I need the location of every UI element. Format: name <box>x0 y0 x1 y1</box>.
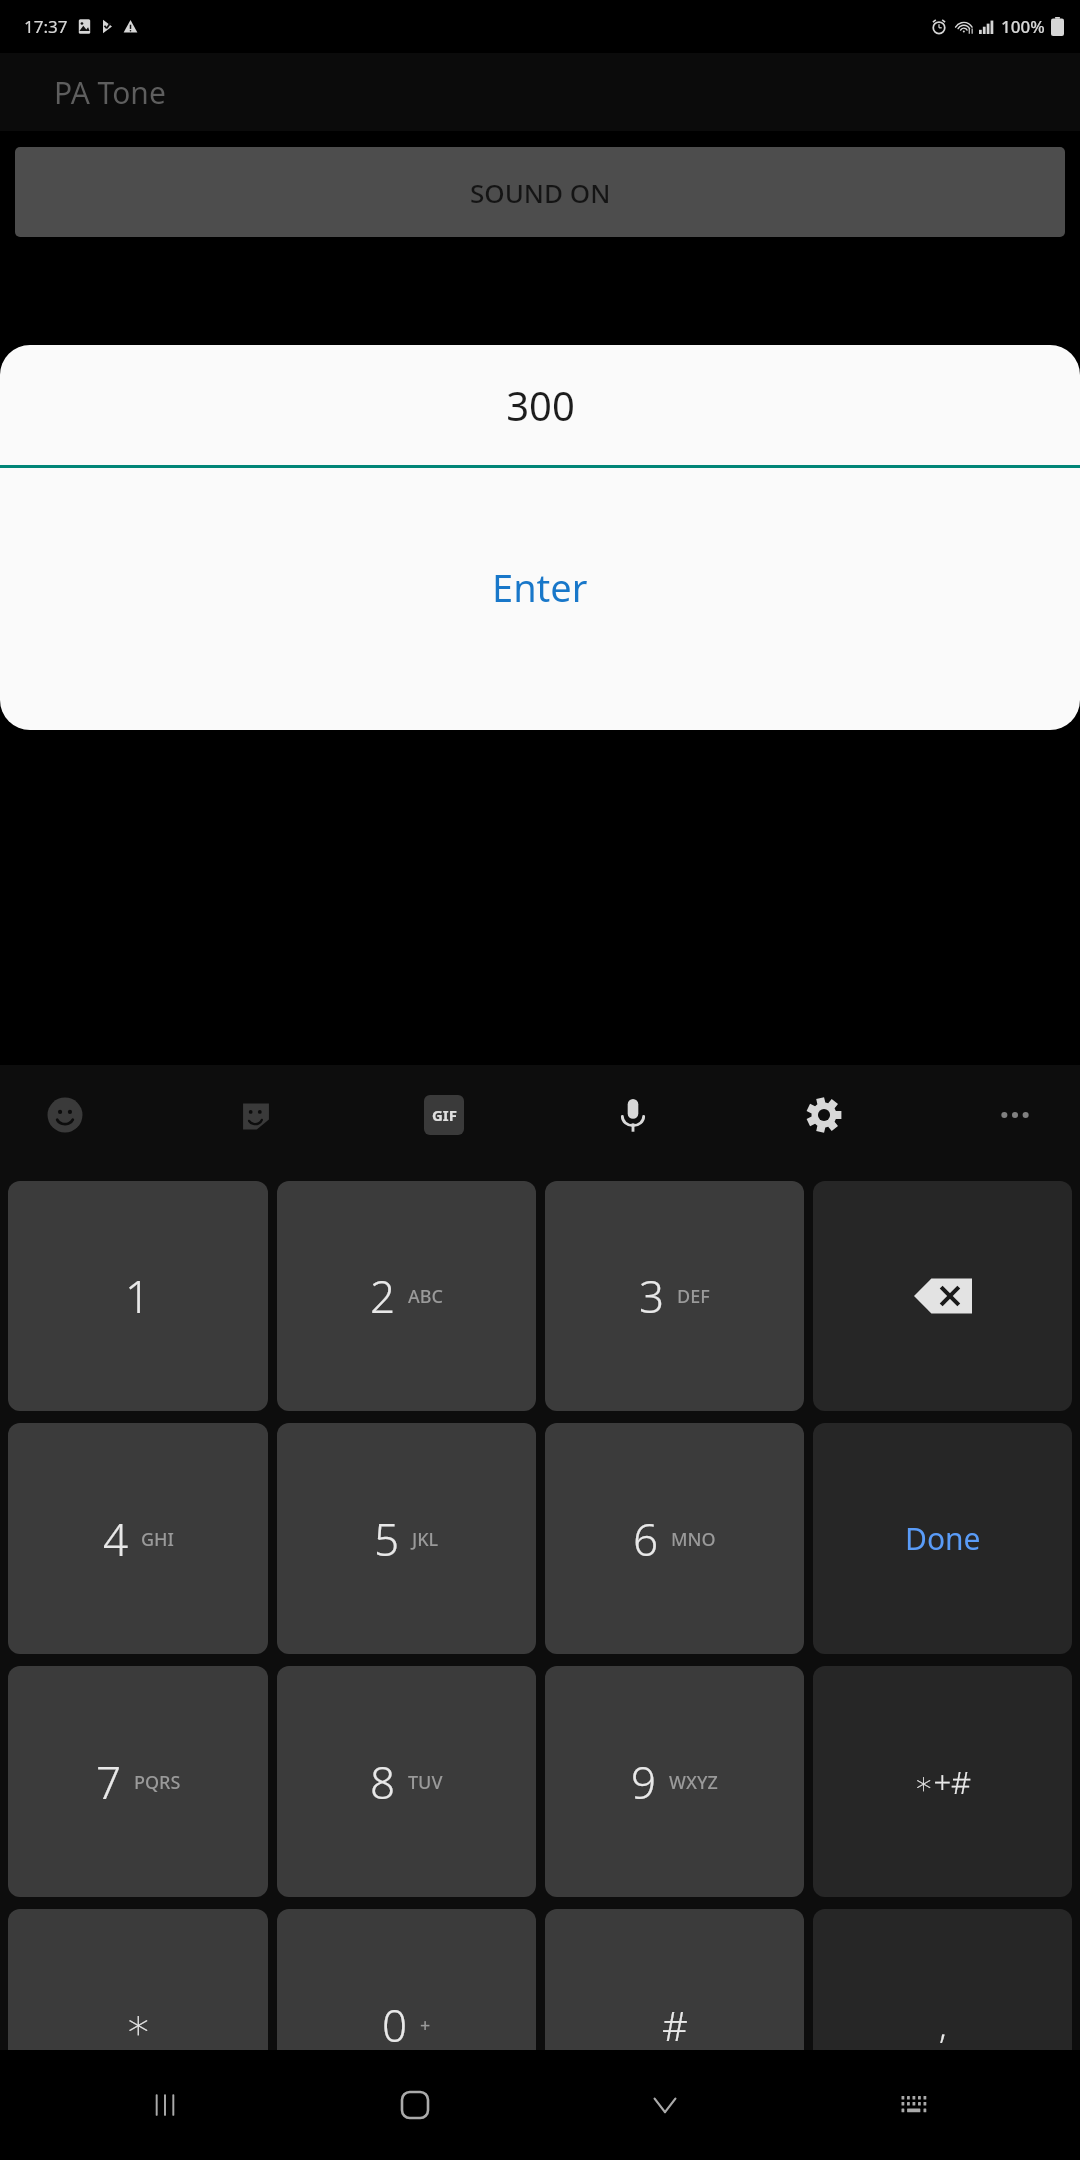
staticText: GIF <box>432 1105 457 1125</box>
staticText: GHI <box>141 1527 174 1552</box>
staticText: LEFT <box>247 441 308 479</box>
staticText: 0 <box>382 1995 408 2055</box>
staticText: Done <box>905 1518 981 1559</box>
staticText: 300 <box>506 378 575 432</box>
button[interactable]: Hide keyboard <box>540 2050 790 2160</box>
button[interactable]: More options <box>992 1092 1038 1138</box>
button[interactable]: 9 <box>545 1666 804 1897</box>
staticText: 1 <box>125 1266 151 1326</box>
staticText: RIGHT <box>761 441 845 479</box>
button[interactable]: Emoji <box>42 1092 88 1138</box>
button[interactable]: 4 <box>8 1423 268 1654</box>
staticText: TUV <box>408 1770 443 1795</box>
button[interactable]: 3 <box>545 1181 804 1411</box>
staticText: 2 <box>370 1266 396 1326</box>
button[interactable]: # <box>545 1909 804 2140</box>
staticText: PQRS <box>134 1770 181 1795</box>
button[interactable]: 1 <box>8 1181 268 1411</box>
button[interactable]: , <box>813 1909 1072 2140</box>
staticText: WXYZ <box>669 1770 718 1795</box>
staticText: ∗ <box>125 2000 152 2049</box>
button[interactable]: 8 <box>277 1666 536 1897</box>
staticText: + <box>420 2013 431 2038</box>
button[interactable]: Home <box>290 2050 540 2160</box>
button[interactable]: 5 <box>277 1423 536 1654</box>
staticText: 4 <box>103 1509 129 1569</box>
button[interactable]: Stickers <box>233 1092 279 1138</box>
staticText: 3 <box>639 1266 665 1326</box>
button[interactable]: RIGHT <box>550 427 1055 493</box>
button[interactable]: Voice input <box>610 1092 656 1138</box>
button[interactable]: GIF <box>424 1095 464 1135</box>
button[interactable]: Keyboard settings <box>801 1092 847 1138</box>
button[interactable]: 6 <box>545 1423 804 1654</box>
button[interactable]: 2 <box>277 1181 536 1411</box>
button[interactable]: 7 <box>8 1666 268 1897</box>
button[interactable]: Enter <box>0 468 1080 730</box>
button[interactable]: Recent apps <box>40 2050 290 2160</box>
staticText: 17:37 <box>24 15 68 38</box>
button[interactable]: Change keyboard <box>790 2050 1040 2160</box>
staticText: ABC <box>408 1284 443 1309</box>
staticText: MNO <box>671 1527 716 1552</box>
staticText: 5 <box>374 1509 400 1569</box>
staticText: 100% <box>1001 15 1045 38</box>
button[interactable]: ∗+# <box>813 1666 1072 1897</box>
staticText: 8 <box>370 1752 396 1812</box>
staticText: DEF <box>677 1284 710 1309</box>
staticText: PA Tone <box>54 72 166 113</box>
staticText: SOUND ON <box>470 175 611 210</box>
staticText: 6 <box>633 1509 659 1569</box>
staticText: Enter <box>492 561 588 613</box>
staticText: ∗+# <box>914 1761 972 1803</box>
button[interactable]: Done <box>813 1423 1072 1654</box>
staticText: , <box>939 2002 947 2048</box>
button[interactable]: SOUND ON <box>15 147 1065 237</box>
staticText: 7 <box>96 1752 122 1812</box>
button[interactable]: LEFT <box>25 427 530 493</box>
staticText: # <box>662 1998 688 2052</box>
staticText: JKL <box>412 1527 439 1552</box>
staticText: 9 <box>631 1752 657 1812</box>
button[interactable]: Backspace <box>813 1181 1072 1411</box>
button[interactable]: 0 <box>277 1909 536 2140</box>
button[interactable]: ∗ <box>8 1909 268 2140</box>
